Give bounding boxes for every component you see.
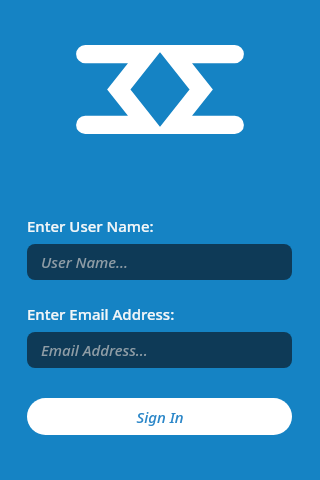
- staticText: User Name...: [41, 252, 128, 272]
- staticText: Enter Email Address:: [27, 304, 175, 324]
- button[interactable]: User Name...: [27, 244, 292, 280]
- button[interactable]: Email Address...: [27, 332, 292, 368]
- staticText: Enter User Name:: [27, 216, 154, 236]
- button[interactable]: Sign In: [27, 398, 292, 435]
- staticText: Sign In: [136, 407, 184, 427]
- other: App logo: [75, 45, 245, 134]
- staticText: Email Address...: [41, 340, 148, 360]
